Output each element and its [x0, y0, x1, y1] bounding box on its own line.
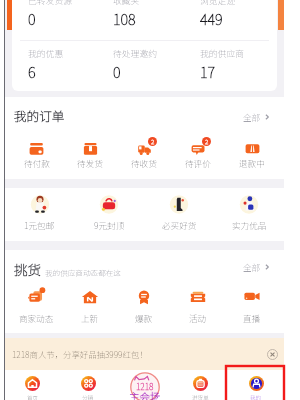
button[interactable]: 待处理邀约	[113, 47, 193, 82]
button[interactable]: 商家动态	[10, 287, 63, 324]
button[interactable]: 关闭	[267, 349, 278, 360]
button[interactable]: 我的供应商	[200, 47, 277, 82]
button[interactable]: 爆款	[117, 287, 171, 324]
staticText: 9元封顶	[94, 219, 125, 231]
staticText: 我的订单	[14, 106, 65, 124]
staticText: 挑货	[14, 259, 41, 279]
staticText: 449	[200, 8, 223, 29]
button[interactable]: 必买好货	[144, 193, 214, 231]
button[interactable]: 直播	[225, 287, 279, 324]
staticText: 1218	[136, 380, 154, 392]
button[interactable]: 待发货	[63, 141, 117, 169]
staticText: 进货单	[192, 394, 209, 400]
button[interactable]: 1218商人节，分享好品抽3999红包！	[5, 338, 284, 370]
staticText: 0	[113, 61, 121, 82]
button[interactable]: 分销	[60, 370, 116, 400]
staticText: 退款中	[239, 157, 265, 169]
staticText: 待收货	[131, 157, 157, 169]
staticText: 我的优惠	[28, 47, 64, 60]
staticText: 0	[28, 8, 36, 29]
button[interactable]: 我的	[228, 370, 284, 400]
button[interactable]: 上新	[63, 287, 117, 324]
staticText: 6	[28, 61, 36, 82]
button[interactable]: 待付款	[10, 141, 63, 169]
staticText: 108	[113, 8, 136, 29]
staticText: 我的供应商	[200, 47, 244, 60]
staticText: 1218商人节，分享好品抽3999红包！	[12, 348, 148, 360]
staticText: 实力优品	[232, 219, 267, 231]
staticText: 待付款	[24, 157, 50, 169]
staticText: 浏览足迹	[200, 0, 236, 7]
button[interactable]: 全部	[243, 261, 271, 273]
staticText: 已转发资源	[28, 0, 72, 7]
staticText: 上新	[81, 312, 99, 324]
button[interactable]: 活动	[171, 287, 225, 324]
staticText: 全部	[243, 261, 261, 273]
staticText: 全部	[243, 111, 261, 123]
staticText: 1元包邮	[24, 219, 55, 231]
button[interactable]: 全部	[243, 111, 271, 123]
button[interactable]: 2	[117, 141, 171, 169]
staticText: 活动	[189, 312, 207, 324]
button[interactable]: 进货单	[172, 370, 228, 400]
staticText: 直播	[243, 312, 261, 324]
button[interactable]: 我的优惠	[28, 47, 108, 82]
staticText: 我的供应商动态都在这	[45, 267, 121, 278]
button[interactable]: 已转发资源	[28, 0, 108, 29]
staticText: 17	[200, 61, 216, 82]
button[interactable]: 1元包邮	[5, 193, 74, 231]
button[interactable]: 主会场	[127, 372, 163, 400]
button[interactable]: 首页	[5, 370, 60, 400]
staticText: 我的	[250, 394, 262, 400]
button[interactable]: 浏览足迹	[200, 0, 277, 29]
staticText: 待发货	[77, 157, 103, 169]
staticText: 待处理邀约	[113, 47, 157, 60]
staticText: 主会场	[129, 389, 161, 400]
button[interactable]: 9元封顶	[74, 193, 144, 231]
button[interactable]: 收藏夹	[113, 0, 193, 29]
staticText: 爆款	[135, 312, 153, 324]
button[interactable]: 退款中	[225, 141, 279, 169]
button[interactable]: 实力优品	[214, 193, 284, 231]
staticText: 2	[205, 137, 209, 146]
staticText: 待评价	[185, 157, 211, 169]
staticText: 必买好货	[162, 219, 197, 231]
staticText: 商家动态	[19, 312, 54, 324]
staticText: 首页	[27, 394, 39, 400]
staticText: 收藏夹	[113, 0, 140, 7]
button[interactable]: 2	[171, 141, 225, 169]
staticText: 2	[151, 137, 155, 146]
staticText: 分销	[82, 394, 94, 400]
